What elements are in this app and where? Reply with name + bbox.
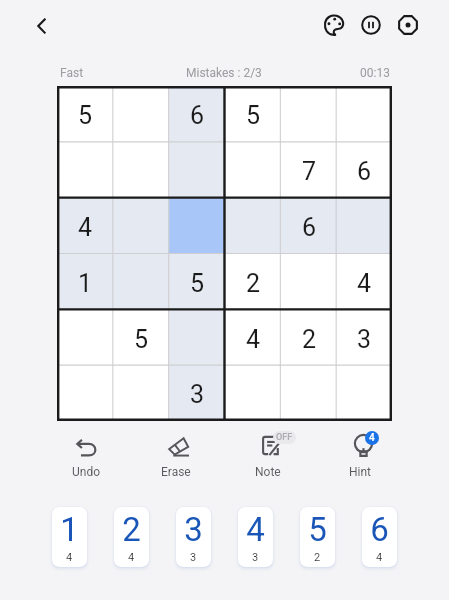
button[interactable] [169, 198, 225, 254]
staticText: OFF [276, 432, 293, 443]
button[interactable]: 4 [57, 198, 113, 254]
staticText: Mistakes : 2/3 [186, 66, 262, 80]
button[interactable]: 5 [169, 254, 225, 310]
staticText: Erase [161, 465, 191, 479]
button[interactable] [57, 142, 113, 198]
button[interactable]: 6 [169, 86, 225, 142]
button[interactable] [281, 86, 337, 142]
staticText: Note [255, 465, 281, 479]
staticText: 6 [370, 510, 389, 549]
button[interactable]: 7 [281, 142, 337, 198]
staticText: Hint [349, 465, 372, 479]
button[interactable]: 6 [281, 198, 337, 254]
staticText: 1 [78, 269, 93, 298]
staticText: 7 [302, 157, 317, 186]
button[interactable]: Undo [54, 431, 118, 479]
button[interactable]: 6 [362, 507, 397, 567]
button[interactable] [225, 366, 281, 421]
button[interactable]: Erase [144, 431, 208, 479]
button[interactable]: 2 [281, 310, 337, 366]
button[interactable]: 1 [57, 254, 113, 310]
button[interactable] [113, 86, 169, 142]
button[interactable] [225, 198, 281, 254]
button[interactable]: OFF [236, 431, 300, 479]
button[interactable] [57, 310, 113, 366]
staticText: 3 [190, 380, 205, 409]
staticText: 2 [246, 269, 261, 298]
button[interactable]: Back [26, 10, 58, 42]
staticText: 5 [134, 325, 149, 354]
staticText: 4 [66, 551, 73, 564]
button[interactable] [225, 142, 281, 198]
button[interactable] [169, 310, 225, 366]
staticText: 4 [369, 432, 375, 444]
staticText: 6 [357, 157, 372, 186]
staticText: 5 [246, 101, 261, 130]
button[interactable]: 4 [225, 310, 281, 366]
button[interactable]: 5 [225, 86, 281, 142]
button[interactable]: 5 [57, 86, 113, 142]
staticText: 3 [252, 551, 259, 564]
button[interactable]: Settings [391, 8, 425, 42]
button[interactable] [281, 366, 337, 421]
button[interactable] [337, 86, 392, 142]
button[interactable]: Theme [317, 8, 351, 42]
button[interactable] [169, 142, 225, 198]
staticText: 4 [78, 213, 93, 242]
button[interactable] [337, 198, 392, 254]
button[interactable]: 4 [328, 431, 392, 479]
staticText: 2 [314, 551, 321, 564]
staticText: 5 [190, 269, 205, 298]
staticText: 3 [190, 551, 197, 564]
button[interactable] [113, 366, 169, 421]
button[interactable]: 5 [113, 310, 169, 366]
staticText: 6 [190, 101, 205, 130]
staticText: 00:13 [360, 66, 390, 80]
staticText: 4 [128, 551, 135, 564]
button[interactable]: 1 [52, 507, 87, 567]
staticText: Fast [60, 66, 84, 80]
staticText: 4 [246, 510, 265, 549]
button[interactable]: 2 [225, 254, 281, 310]
button[interactable]: 2 [114, 507, 149, 567]
button[interactable]: 3 [169, 366, 225, 421]
button[interactable]: 5 [300, 507, 335, 567]
staticText: 6 [302, 213, 317, 242]
button[interactable] [337, 366, 392, 421]
staticText: Undo [72, 465, 101, 479]
staticText: 3 [184, 510, 203, 549]
staticText: 4 [357, 269, 372, 298]
button[interactable]: 4 [238, 507, 273, 567]
staticText: 4 [376, 551, 383, 564]
button[interactable]: Pause [354, 8, 388, 42]
button[interactable] [113, 142, 169, 198]
staticText: 5 [78, 101, 93, 130]
button[interactable]: 6 [337, 142, 392, 198]
staticText: 2 [122, 510, 141, 549]
button[interactable]: 4 [337, 254, 392, 310]
button[interactable]: 3 [176, 507, 211, 567]
button[interactable]: 3 [337, 310, 392, 366]
staticText: 2 [302, 325, 317, 354]
staticText: 5 [308, 510, 327, 549]
staticText: 4 [246, 325, 261, 354]
staticText: 1 [60, 510, 79, 549]
button[interactable] [281, 254, 337, 310]
button[interactable] [57, 366, 113, 421]
button[interactable] [113, 198, 169, 254]
button[interactable] [113, 254, 169, 310]
staticText: 3 [357, 325, 372, 354]
